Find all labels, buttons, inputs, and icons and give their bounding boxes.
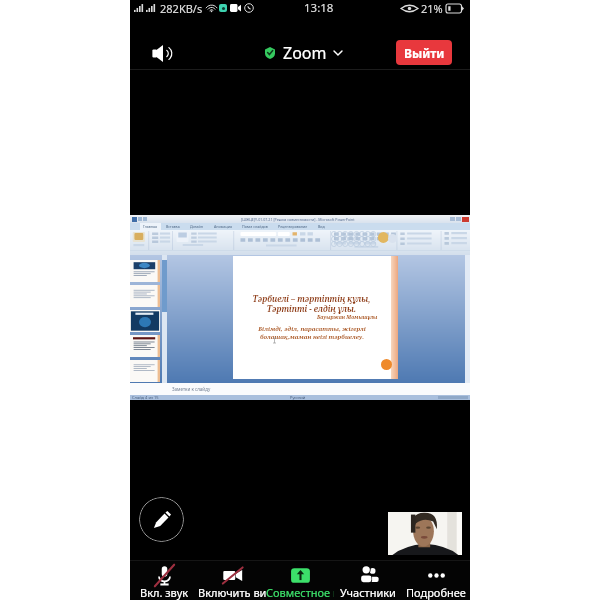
staticText: Русский	[290, 395, 306, 400]
button[interactable]: Zoom	[261, 38, 346, 68]
button[interactable]: Выйти	[396, 40, 452, 65]
staticText: Слайд 4 из 15	[132, 395, 159, 400]
staticText: Выйти	[404, 45, 445, 61]
staticText: Вкл. звук	[140, 585, 189, 600]
staticText: Анимация	[214, 224, 232, 229]
staticText: Заметки к слайду	[172, 386, 211, 392]
staticText: Участники	[340, 585, 396, 600]
staticText: 282KB/s	[160, 1, 203, 16]
staticText: Включить ви	[198, 585, 266, 600]
staticText: Главная	[143, 224, 158, 229]
staticText: Вид	[318, 224, 325, 229]
button[interactable]: Участники	[334, 560, 402, 600]
staticText: 21%	[421, 1, 443, 16]
button[interactable]: Вкл. звук	[130, 560, 198, 600]
button[interactable]: Включить ви	[198, 560, 266, 600]
staticText: Тәрбиелі – тәртіптің құлы, Тәртіпті - ел…	[252, 293, 371, 314]
button[interactable]: Annotate	[139, 497, 184, 542]
button[interactable]: Совместное и	[266, 560, 334, 600]
button[interactable]: Подробнее	[402, 560, 470, 600]
staticText: Совместное и	[266, 585, 334, 600]
staticText: 13:18	[304, 0, 334, 16]
staticText: Подробнее	[406, 585, 466, 600]
button[interactable]: Self video	[388, 512, 462, 555]
staticText: Бауыржан Момышұлы	[317, 314, 378, 321]
staticText: Дизайн	[190, 224, 204, 229]
staticText: Вставка	[166, 224, 180, 229]
button[interactable]: Speaker	[150, 40, 176, 66]
staticText: [ШЖЦЕ]Y-01.07.21 [Режим совместимости] -…	[241, 217, 355, 222]
staticText: Zoom	[283, 42, 327, 64]
staticText: Рецензирование	[278, 224, 308, 229]
staticText: Показ слайдов	[242, 224, 268, 229]
staticText: Білімді, әділ, парасатты, жігерлі болаша…	[258, 325, 366, 341]
